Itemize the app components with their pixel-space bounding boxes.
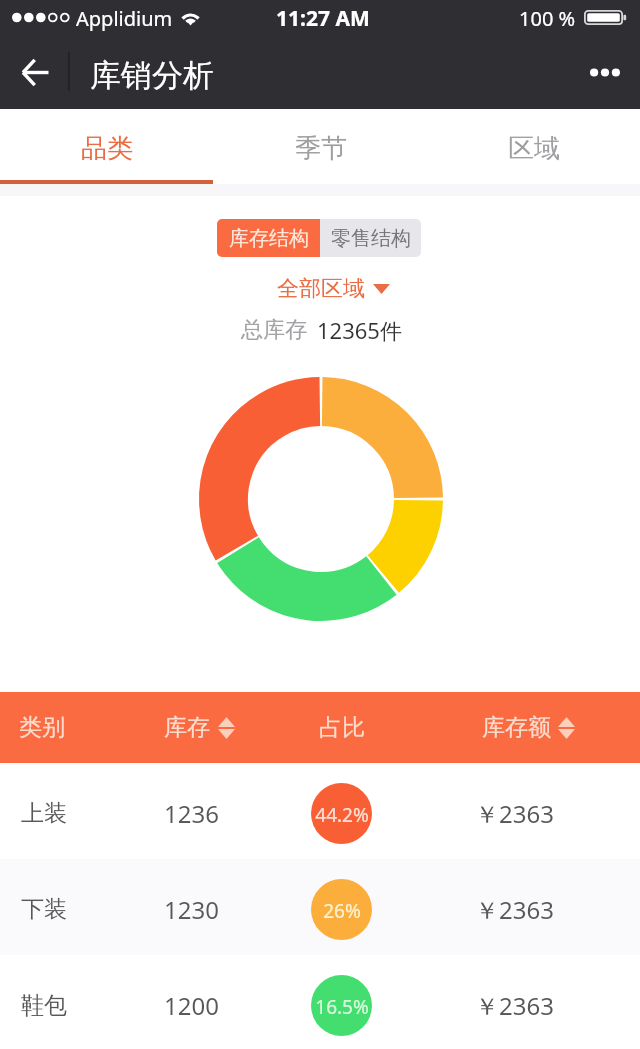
button[interactable]: 全部区域 bbox=[277, 270, 390, 308]
staticText: 总库存 bbox=[241, 316, 307, 344]
staticText: 1230 bbox=[164, 893, 219, 926]
button[interactable]: Back bbox=[0, 36, 69, 109]
button[interactable]: 库存结构 bbox=[217, 219, 320, 257]
staticText: 类别 bbox=[19, 713, 65, 742]
staticText: 库存额 bbox=[482, 713, 551, 742]
staticText: 零售结构 bbox=[331, 226, 411, 251]
staticText: 库存 bbox=[164, 713, 210, 742]
button[interactable]: 库存 bbox=[164, 692, 235, 763]
staticText: ￥2363 bbox=[475, 797, 554, 830]
button[interactable]: 鞋包 bbox=[0, 955, 640, 1049]
staticText: 26% bbox=[323, 898, 361, 924]
button[interactable]: 季节 bbox=[214, 109, 427, 184]
staticText: 库销分析 bbox=[90, 56, 214, 95]
staticText: 下装 bbox=[21, 895, 67, 924]
button[interactable]: 占比 bbox=[300, 692, 384, 763]
staticText: 区域 bbox=[508, 132, 560, 165]
staticText: 44.2% bbox=[315, 802, 369, 828]
button[interactable]: 下装 bbox=[0, 859, 640, 955]
staticText: 品类 bbox=[81, 132, 133, 165]
staticText: 1236 bbox=[164, 797, 219, 830]
staticText: 占比 bbox=[319, 713, 365, 742]
staticText: ￥2363 bbox=[475, 893, 554, 926]
staticText: 全部区域 bbox=[277, 275, 365, 303]
button[interactable]: 类别 bbox=[0, 692, 140, 763]
button[interactable]: 库存额 bbox=[482, 692, 575, 763]
staticText: 上装 bbox=[21, 799, 67, 828]
staticText: 12365件 bbox=[317, 315, 402, 345]
button[interactable]: 零售结构 bbox=[320, 219, 421, 257]
button[interactable]: 上装 bbox=[0, 763, 640, 859]
staticText: 1200 bbox=[164, 989, 219, 1022]
staticText: 16.5% bbox=[315, 994, 369, 1020]
button[interactable]: More options bbox=[570, 36, 640, 109]
staticText: 库存结构 bbox=[229, 226, 309, 251]
staticText: 季节 bbox=[295, 132, 347, 165]
button[interactable]: 区域 bbox=[427, 109, 640, 184]
staticText: ￥2363 bbox=[475, 989, 554, 1022]
button[interactable]: 品类 bbox=[0, 109, 214, 184]
staticText: Applidium bbox=[76, 5, 173, 32]
staticText: 11:27 AM bbox=[276, 4, 370, 33]
staticText: 100 % bbox=[519, 5, 576, 32]
staticText: 鞋包 bbox=[21, 991, 67, 1020]
